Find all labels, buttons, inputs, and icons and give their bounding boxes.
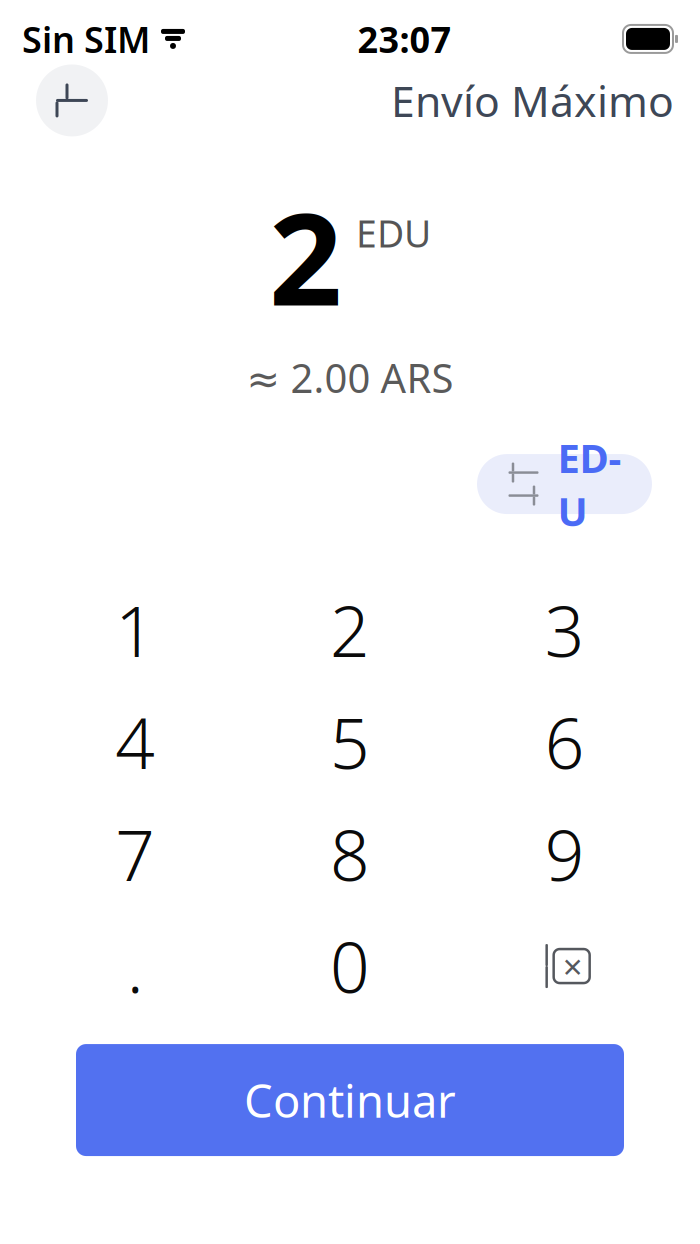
button[interactable]: EDU	[477, 454, 652, 514]
staticText: 4	[115, 696, 155, 788]
button[interactable]: 4	[28, 686, 243, 798]
staticText: EDU	[356, 208, 431, 258]
staticText: 8	[330, 808, 370, 900]
staticText: 6	[545, 696, 585, 788]
button[interactable]: 3	[457, 574, 672, 686]
staticText: ≈ 2.00 ARS	[246, 351, 453, 404]
button[interactable]: Delete	[457, 910, 672, 1022]
button[interactable]: 5	[243, 686, 457, 798]
button[interactable]: 8	[243, 798, 457, 910]
staticText: Sin SIM	[22, 15, 150, 63]
staticText: 7	[115, 808, 155, 900]
button[interactable]: 6	[457, 686, 672, 798]
button[interactable]: 1	[28, 574, 243, 686]
staticText: Envío Máximo	[391, 72, 674, 129]
staticText: 3	[545, 584, 585, 676]
button[interactable]: 0	[243, 910, 457, 1022]
staticText: ×	[563, 943, 583, 989]
staticText: Continuar	[244, 1070, 456, 1130]
button[interactable]: Continuar	[76, 1044, 624, 1156]
staticText: 2	[330, 584, 370, 676]
staticText: 23:07	[357, 15, 451, 63]
staticText: 0	[330, 920, 370, 1012]
button[interactable]: 9	[457, 798, 672, 910]
staticText: 5	[330, 696, 370, 788]
button[interactable]: Back	[36, 64, 108, 136]
staticText: 9	[545, 808, 585, 900]
button[interactable]: 2	[243, 574, 457, 686]
staticText: EDU	[557, 431, 621, 537]
staticText: 2	[269, 171, 342, 341]
button[interactable]: 7	[28, 798, 243, 910]
button[interactable]: .	[28, 910, 243, 1022]
staticText: .	[127, 920, 144, 1012]
staticText: 1	[115, 584, 155, 676]
